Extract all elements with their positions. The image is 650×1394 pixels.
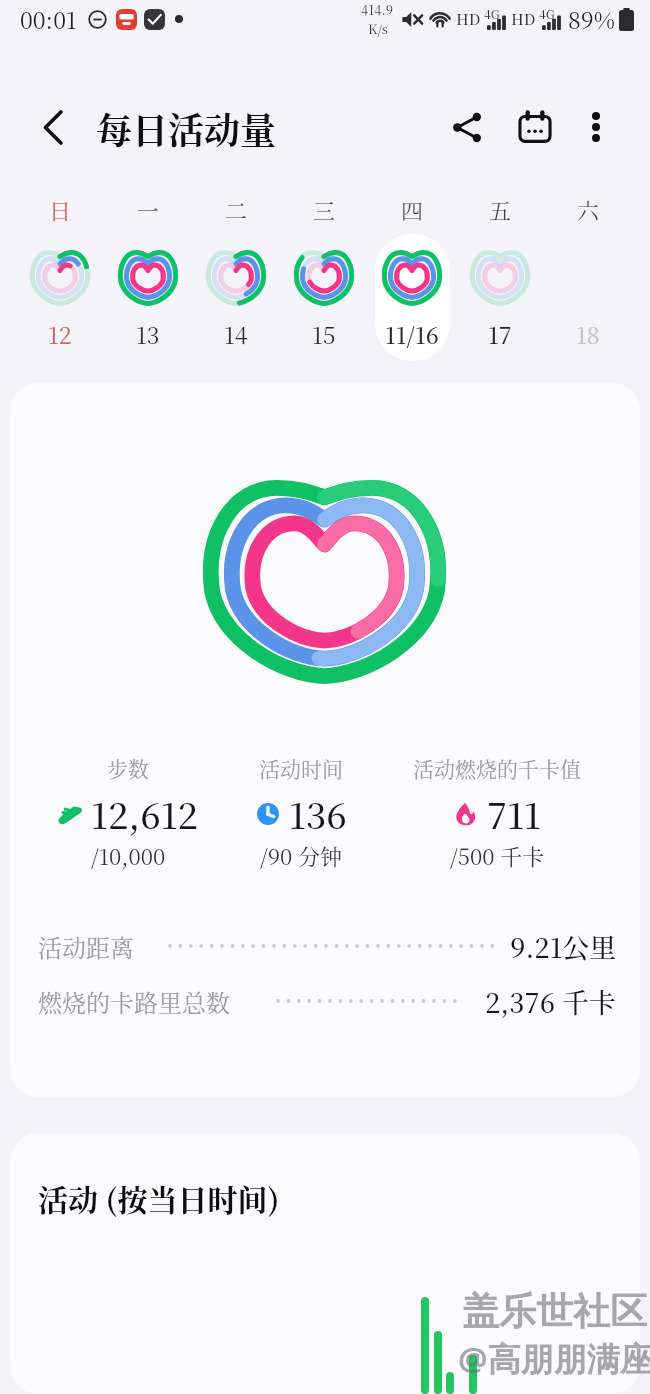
staticText: 活动距离 [38,929,134,963]
staticText: 18 [576,318,600,351]
staticText: 12 [48,318,72,351]
button[interactable]: 步数 [18,753,238,871]
staticText: 2,376 千卡 [485,982,616,1021]
staticText: 步数 [107,753,149,783]
staticText: 14 [224,318,248,351]
staticText: 414.9 [361,0,394,19]
staticText: 活动 (按当日时间) [38,1176,280,1219]
staticText: 13 [136,318,160,351]
staticText: 4G [539,5,555,22]
staticText: 一 [137,194,160,226]
staticText: 12,612 [91,788,199,840]
staticText: 89% [568,3,615,36]
button[interactable]: 五 [456,190,544,355]
staticText: 00:01 [20,3,77,36]
button[interactable]: More options [570,101,622,153]
staticText: 15 [312,318,336,351]
staticText: 六 [577,194,600,226]
staticText: @高朋朋满座 [458,1336,650,1381]
button[interactable]: 燃烧的卡路里总数 [10,978,640,1024]
staticText: 11/16 [385,318,439,351]
staticText: 活动时间 [259,753,343,783]
staticText: 4G [484,5,500,22]
staticText: 燃烧的卡路里总数 [38,984,230,1018]
staticText: HD [456,8,481,30]
staticText: 二 [225,194,248,226]
staticText: 711 [487,788,541,840]
button[interactable]: 日 [16,190,104,355]
button[interactable]: Back [31,105,75,149]
staticText: 盖乐世社区 [462,1288,647,1335]
button[interactable]: 四 [368,190,456,355]
button[interactable]: 六 [544,190,632,355]
staticText: /90 分钟 [260,840,342,871]
staticText: 四 [401,194,424,226]
button[interactable]: Share [441,101,493,153]
button[interactable]: 一 [104,190,192,355]
button[interactable]: Calendar [509,101,561,153]
staticText: /500 千卡 [450,840,545,871]
staticText: 136 [289,788,347,840]
staticText: 日 [49,194,72,226]
staticText: 活动燃烧的千卡值 [413,753,581,783]
button[interactable]: 活动燃烧的千卡值 [387,753,607,871]
button[interactable]: 活动距离 [10,923,640,969]
staticText: 每日活动量 [96,103,277,155]
button[interactable]: 活动时间 [191,753,411,871]
staticText: 三 [313,194,336,226]
button[interactable]: 三 [280,190,368,355]
staticText: 17 [488,318,512,351]
staticText: 9.21公里 [510,927,617,966]
staticText: K/s [368,19,388,38]
staticText: HD [511,8,536,30]
staticText: 五 [489,194,512,226]
button[interactable]: 二 [192,190,280,355]
staticText: /10,000 [91,840,166,871]
